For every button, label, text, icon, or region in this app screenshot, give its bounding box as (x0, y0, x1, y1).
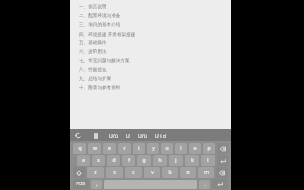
staticText: 四、环境搭建 开发框架搭建 (79, 31, 136, 37)
staticText: z (94, 169, 97, 176)
staticText: m (204, 169, 209, 176)
button[interactable]: b (162, 167, 178, 178)
button[interactable]: p (203, 143, 215, 154)
button[interactable]: s (92, 155, 105, 166)
button[interactable]: Backspace (216, 167, 228, 178)
staticText: g (142, 157, 146, 164)
staticText: p (207, 145, 211, 152)
button[interactable]: 三、项目的基本介绍 (76, 20, 225, 29)
staticText: i (180, 145, 182, 152)
staticText: o (193, 145, 197, 152)
staticText: h (158, 157, 162, 164)
button[interactable]: . (199, 180, 210, 189)
staticText: 六、进阶用法 (79, 49, 107, 55)
staticText: a (82, 157, 85, 164)
button[interactable]: U/ü (135, 130, 150, 141)
button[interactable]: Enter (217, 155, 228, 166)
staticText: U i d (155, 132, 167, 139)
staticText: q (78, 145, 82, 152)
staticText: 三、项目的基本介绍 (79, 22, 121, 28)
staticText: s (97, 157, 100, 164)
button[interactable]: 十、附录与参考资料 (76, 83, 225, 92)
staticText: . (204, 181, 206, 188)
button[interactable]: m (198, 167, 214, 178)
button[interactable]: l (201, 155, 215, 166)
button[interactable]: j (169, 155, 183, 166)
staticText: b (168, 169, 172, 176)
button[interactable]: v (144, 167, 160, 178)
button[interactable]: , (91, 180, 102, 189)
button[interactable]: Undo (73, 130, 84, 141)
staticText: ?123 (76, 181, 86, 187)
staticText: U/ü (109, 132, 118, 139)
button[interactable]: a (77, 155, 90, 166)
staticText: u (165, 145, 169, 152)
button[interactable]: U (123, 130, 133, 141)
button[interactable]: z (87, 167, 104, 178)
button[interactable]: t (133, 143, 145, 154)
staticText: w (93, 145, 97, 152)
button[interactable]: U/ü (106, 130, 121, 141)
button[interactable]: Enter (212, 179, 228, 189)
button[interactable]: U i d (152, 130, 170, 141)
button[interactable]: 一、前言说明 (76, 2, 225, 11)
button[interactable]: e (103, 143, 116, 154)
button[interactable]: d (107, 155, 120, 166)
staticText: n (186, 169, 190, 176)
staticText: , (96, 181, 98, 188)
button[interactable]: k (185, 155, 199, 166)
button[interactable]: q (73, 143, 86, 154)
staticText: 七、常见问题与解决方案 (79, 58, 130, 64)
staticText: 九、总结与扩展 (79, 76, 112, 82)
staticText: j (175, 157, 177, 164)
button[interactable]: f (122, 155, 135, 166)
button[interactable]: w (88, 143, 101, 154)
staticText: k (191, 157, 194, 164)
button[interactable]: ?123 (73, 179, 89, 189)
staticText: 五、基础操作 (79, 40, 107, 46)
button[interactable]: 四、环境搭建 开发框架搭建 (76, 29, 225, 38)
button[interactable]: 九、总结与扩展 (76, 74, 225, 83)
staticText: t (138, 145, 140, 152)
button[interactable]: x (106, 167, 123, 178)
button[interactable]: u (161, 143, 173, 154)
staticText: f (128, 157, 130, 164)
staticText: U/ü (138, 132, 147, 139)
staticText: r (123, 145, 126, 152)
staticText: c (132, 169, 135, 176)
button[interactable]: 八、性能优化 (76, 65, 225, 74)
button[interactable]: Backspace (217, 143, 228, 154)
button[interactable]: Clipboard (91, 131, 100, 140)
button[interactable]: 二、配置环境与准备 (76, 11, 225, 20)
button[interactable]: 六、进阶用法 (76, 47, 225, 56)
staticText: d (112, 157, 116, 164)
staticText: 二、配置环境与准备 (79, 13, 121, 19)
staticText: y (152, 145, 155, 152)
staticText: 八、性能优化 (79, 67, 107, 73)
staticText: 一、前言说明 (79, 4, 107, 10)
button[interactable]: h (153, 155, 167, 166)
button[interactable]: g (137, 155, 151, 166)
staticText: l (207, 157, 209, 164)
button[interactable]: i (175, 143, 187, 154)
staticText: v (151, 169, 154, 176)
button[interactable]: Shift (73, 167, 85, 178)
staticText: x (113, 169, 116, 176)
button[interactable]: 五、基础操作 (76, 38, 225, 47)
button[interactable]: y (147, 143, 159, 154)
staticText: e (108, 145, 111, 152)
staticText: 十、附录与参考资料 (79, 85, 121, 91)
button[interactable]: r (118, 143, 131, 154)
staticText: U (126, 132, 130, 139)
button[interactable]: n (180, 167, 196, 178)
button[interactable]: c (125, 167, 142, 178)
button[interactable]: 七、常见问题与解决方案 (76, 56, 225, 65)
button[interactable]: o (189, 143, 201, 154)
